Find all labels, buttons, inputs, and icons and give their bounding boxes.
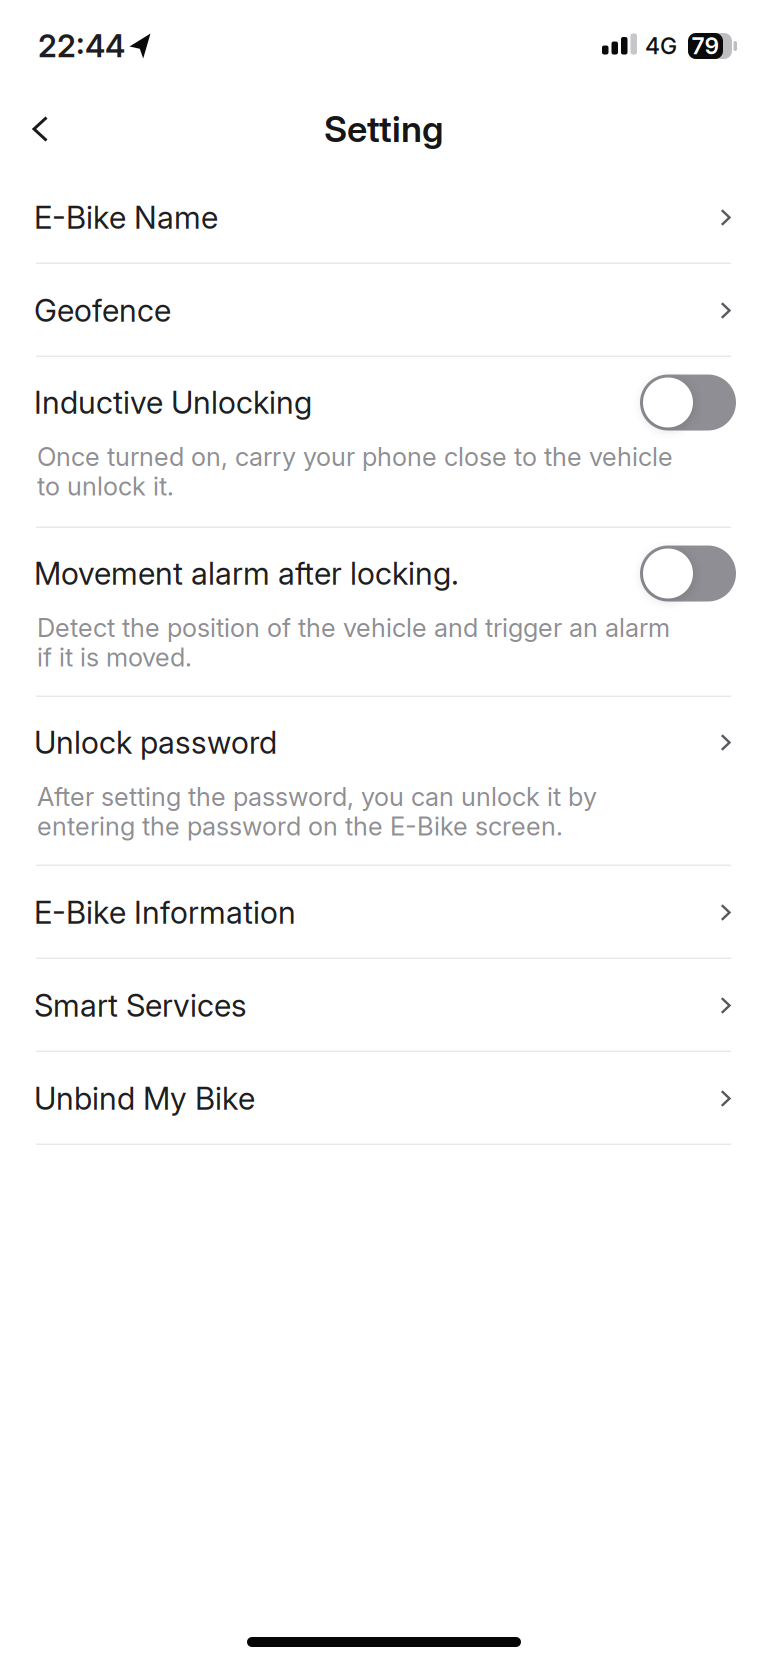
button[interactable]: Unlock password — [0, 697, 768, 866]
staticText: Movement alarm after locking. — [34, 555, 459, 592]
button[interactable] — [640, 545, 736, 601]
button[interactable]: Geofence — [0, 264, 768, 357]
staticText: 22:44 — [38, 27, 125, 65]
button[interactable]: Movement alarm after locking. — [0, 528, 768, 697]
staticText: Inductive Unlocking — [34, 384, 312, 421]
staticText: E-Bike Information — [34, 894, 296, 931]
staticText: After setting the password, you can unlo… — [37, 782, 597, 841]
button[interactable]: Inductive Unlocking — [0, 357, 768, 528]
staticText: Unbind My Bike — [34, 1080, 255, 1117]
staticText: Setting — [324, 107, 444, 151]
staticText: Unlock password — [34, 724, 277, 761]
staticText: 4G — [645, 32, 677, 60]
staticText: E-Bike Name — [34, 199, 218, 236]
button[interactable]: E-Bike Name — [0, 171, 768, 264]
button[interactable] — [0, 116, 48, 142]
button[interactable]: Smart Services — [0, 959, 768, 1052]
staticText: 79 — [691, 32, 719, 60]
button[interactable]: E-Bike Information — [0, 866, 768, 959]
button[interactable] — [640, 374, 736, 430]
staticText: Detect the position of the vehicle and t… — [37, 613, 670, 672]
staticText: Geofence — [34, 292, 171, 329]
staticText: Smart Services — [34, 987, 247, 1024]
button[interactable]: Unbind My Bike — [0, 1052, 768, 1145]
staticText: Once turned on, carry your phone close t… — [37, 442, 673, 501]
